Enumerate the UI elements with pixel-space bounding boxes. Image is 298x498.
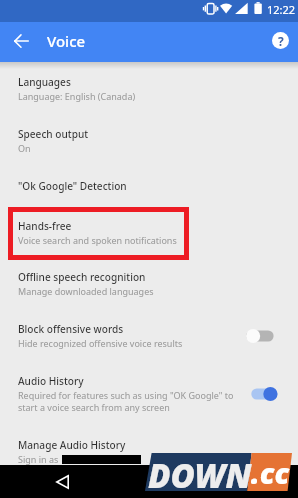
button[interactable]: Offline speech recognition	[0, 258, 298, 309]
staticText: Speech output	[18, 127, 89, 141]
staticText: On	[18, 142, 31, 154]
staticText: Manage downloaded languages	[18, 285, 154, 297]
staticText: Languages	[18, 75, 71, 89]
button[interactable]: Back	[48, 468, 76, 496]
staticText: Sign in as	[18, 453, 59, 465]
button[interactable]: Toggle on	[246, 382, 288, 406]
button[interactable]: Navigate up	[6, 27, 36, 57]
staticText: 12:22	[267, 2, 296, 17]
button[interactable]: "Ok Google" Detection	[0, 166, 298, 207]
staticText: ?	[278, 33, 284, 49]
staticText: "Ok Google" Detection	[18, 179, 127, 193]
button[interactable]: Hands-free	[0, 207, 298, 258]
staticText: Block offensive words	[18, 322, 124, 336]
staticText: .cc	[251, 453, 290, 491]
staticText: Language: English (Canada)	[18, 90, 136, 102]
button[interactable]: Audio History	[0, 361, 298, 425]
staticText: Manage Audio History	[18, 438, 126, 452]
staticText: Hide recognized offensive voice results	[18, 337, 183, 349]
staticText: Voice search and spoken notifications	[18, 234, 177, 246]
button[interactable]: Block offensive words	[0, 309, 298, 361]
staticText: Voice	[47, 31, 86, 51]
staticText: Offline speech recognition	[18, 270, 146, 284]
button[interactable]: Languages	[0, 62, 298, 114]
button[interactable]: Speech output	[0, 114, 298, 166]
button[interactable]: Toggle off	[246, 324, 288, 348]
staticText: Hands-free	[18, 219, 72, 233]
staticText: DOWN	[148, 453, 252, 491]
button[interactable]: Manage Audio History	[0, 425, 298, 477]
staticText: Required for features such as using "OK …	[18, 389, 234, 401]
button[interactable]: Help	[268, 28, 292, 52]
staticText: Audio History	[18, 374, 84, 388]
staticText: start a voice search from any screen	[18, 401, 170, 413]
